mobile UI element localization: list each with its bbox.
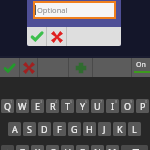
button[interactable]: R xyxy=(46,99,59,113)
button[interactable]: Shift xyxy=(1,145,14,150)
staticText: X xyxy=(35,146,41,150)
button[interactable]: T xyxy=(61,99,74,113)
staticText: F xyxy=(57,123,62,135)
button[interactable]: Options xyxy=(93,58,131,78)
staticText: 5 xyxy=(70,99,73,104)
button[interactable]: E xyxy=(31,99,44,113)
staticText: 9 xyxy=(130,99,133,104)
staticText: P xyxy=(140,100,146,112)
button[interactable]: Accept xyxy=(27,27,46,46)
staticText: Z xyxy=(20,146,26,150)
staticText: V xyxy=(65,146,71,150)
button[interactable]: Cancel xyxy=(47,27,66,46)
staticText: A xyxy=(12,123,18,135)
button[interactable]: G xyxy=(68,122,81,136)
button[interactable]: A xyxy=(8,122,21,136)
button[interactable]: B xyxy=(76,145,89,150)
button[interactable]: Z xyxy=(16,145,29,150)
staticText: D xyxy=(41,123,48,135)
button[interactable]: P xyxy=(136,99,149,113)
button[interactable]: L xyxy=(128,122,141,136)
staticText: O xyxy=(124,100,132,112)
staticText: L xyxy=(132,123,137,135)
staticText: K xyxy=(117,123,123,135)
button[interactable]: On xyxy=(132,58,150,78)
staticText: 2 xyxy=(25,99,28,104)
button[interactable]: W xyxy=(16,99,29,113)
staticText: Optional xyxy=(37,5,68,15)
staticText: Y xyxy=(80,100,86,112)
staticText: 6 xyxy=(85,99,88,104)
button[interactable]: K xyxy=(113,122,126,136)
staticText: 4 xyxy=(55,99,58,104)
button[interactable]: N xyxy=(91,145,104,150)
button[interactable]: S xyxy=(23,122,36,136)
staticText: S xyxy=(27,123,32,135)
button[interactable]: M xyxy=(106,145,119,150)
staticText: H xyxy=(86,123,93,135)
button[interactable]: Cancel xyxy=(20,58,37,78)
button[interactable]: Backspace xyxy=(121,145,148,150)
staticText: 1 xyxy=(10,99,13,104)
button[interactable]: O xyxy=(121,99,134,113)
staticText: T xyxy=(65,100,71,112)
button[interactable]: U xyxy=(91,99,104,113)
button[interactable]: V xyxy=(61,145,74,150)
button[interactable]: I xyxy=(106,99,119,113)
staticText: R xyxy=(50,100,56,112)
staticText: Q xyxy=(4,100,12,112)
staticText: E xyxy=(35,100,41,112)
button[interactable]: D xyxy=(38,122,51,136)
staticText: 8 xyxy=(115,99,118,104)
staticText: 3 xyxy=(40,99,43,104)
button[interactable]: Accept xyxy=(0,58,19,78)
button[interactable]: C xyxy=(46,145,59,150)
staticText: N xyxy=(94,146,101,150)
button[interactable]: H xyxy=(83,122,96,136)
staticText: M xyxy=(108,146,117,150)
button[interactable]: Add xyxy=(69,58,92,78)
button[interactable]: F xyxy=(53,122,66,136)
staticText: I xyxy=(111,100,115,112)
staticText: C xyxy=(50,146,56,150)
button[interactable]: X xyxy=(31,145,44,150)
staticText: J xyxy=(103,123,106,135)
staticText: B xyxy=(80,146,86,150)
button[interactable]: Undo xyxy=(38,58,68,78)
staticText: 7 xyxy=(100,99,103,104)
staticText: U xyxy=(94,100,101,112)
button[interactable]: Optional xyxy=(35,3,114,17)
button[interactable]: Q xyxy=(1,99,14,113)
staticText: W xyxy=(18,100,27,112)
staticText: 0 xyxy=(145,99,148,104)
staticText: G xyxy=(71,123,78,135)
button[interactable]: Y xyxy=(76,99,89,113)
button[interactable]: J xyxy=(98,122,111,136)
staticText: On xyxy=(136,60,146,70)
